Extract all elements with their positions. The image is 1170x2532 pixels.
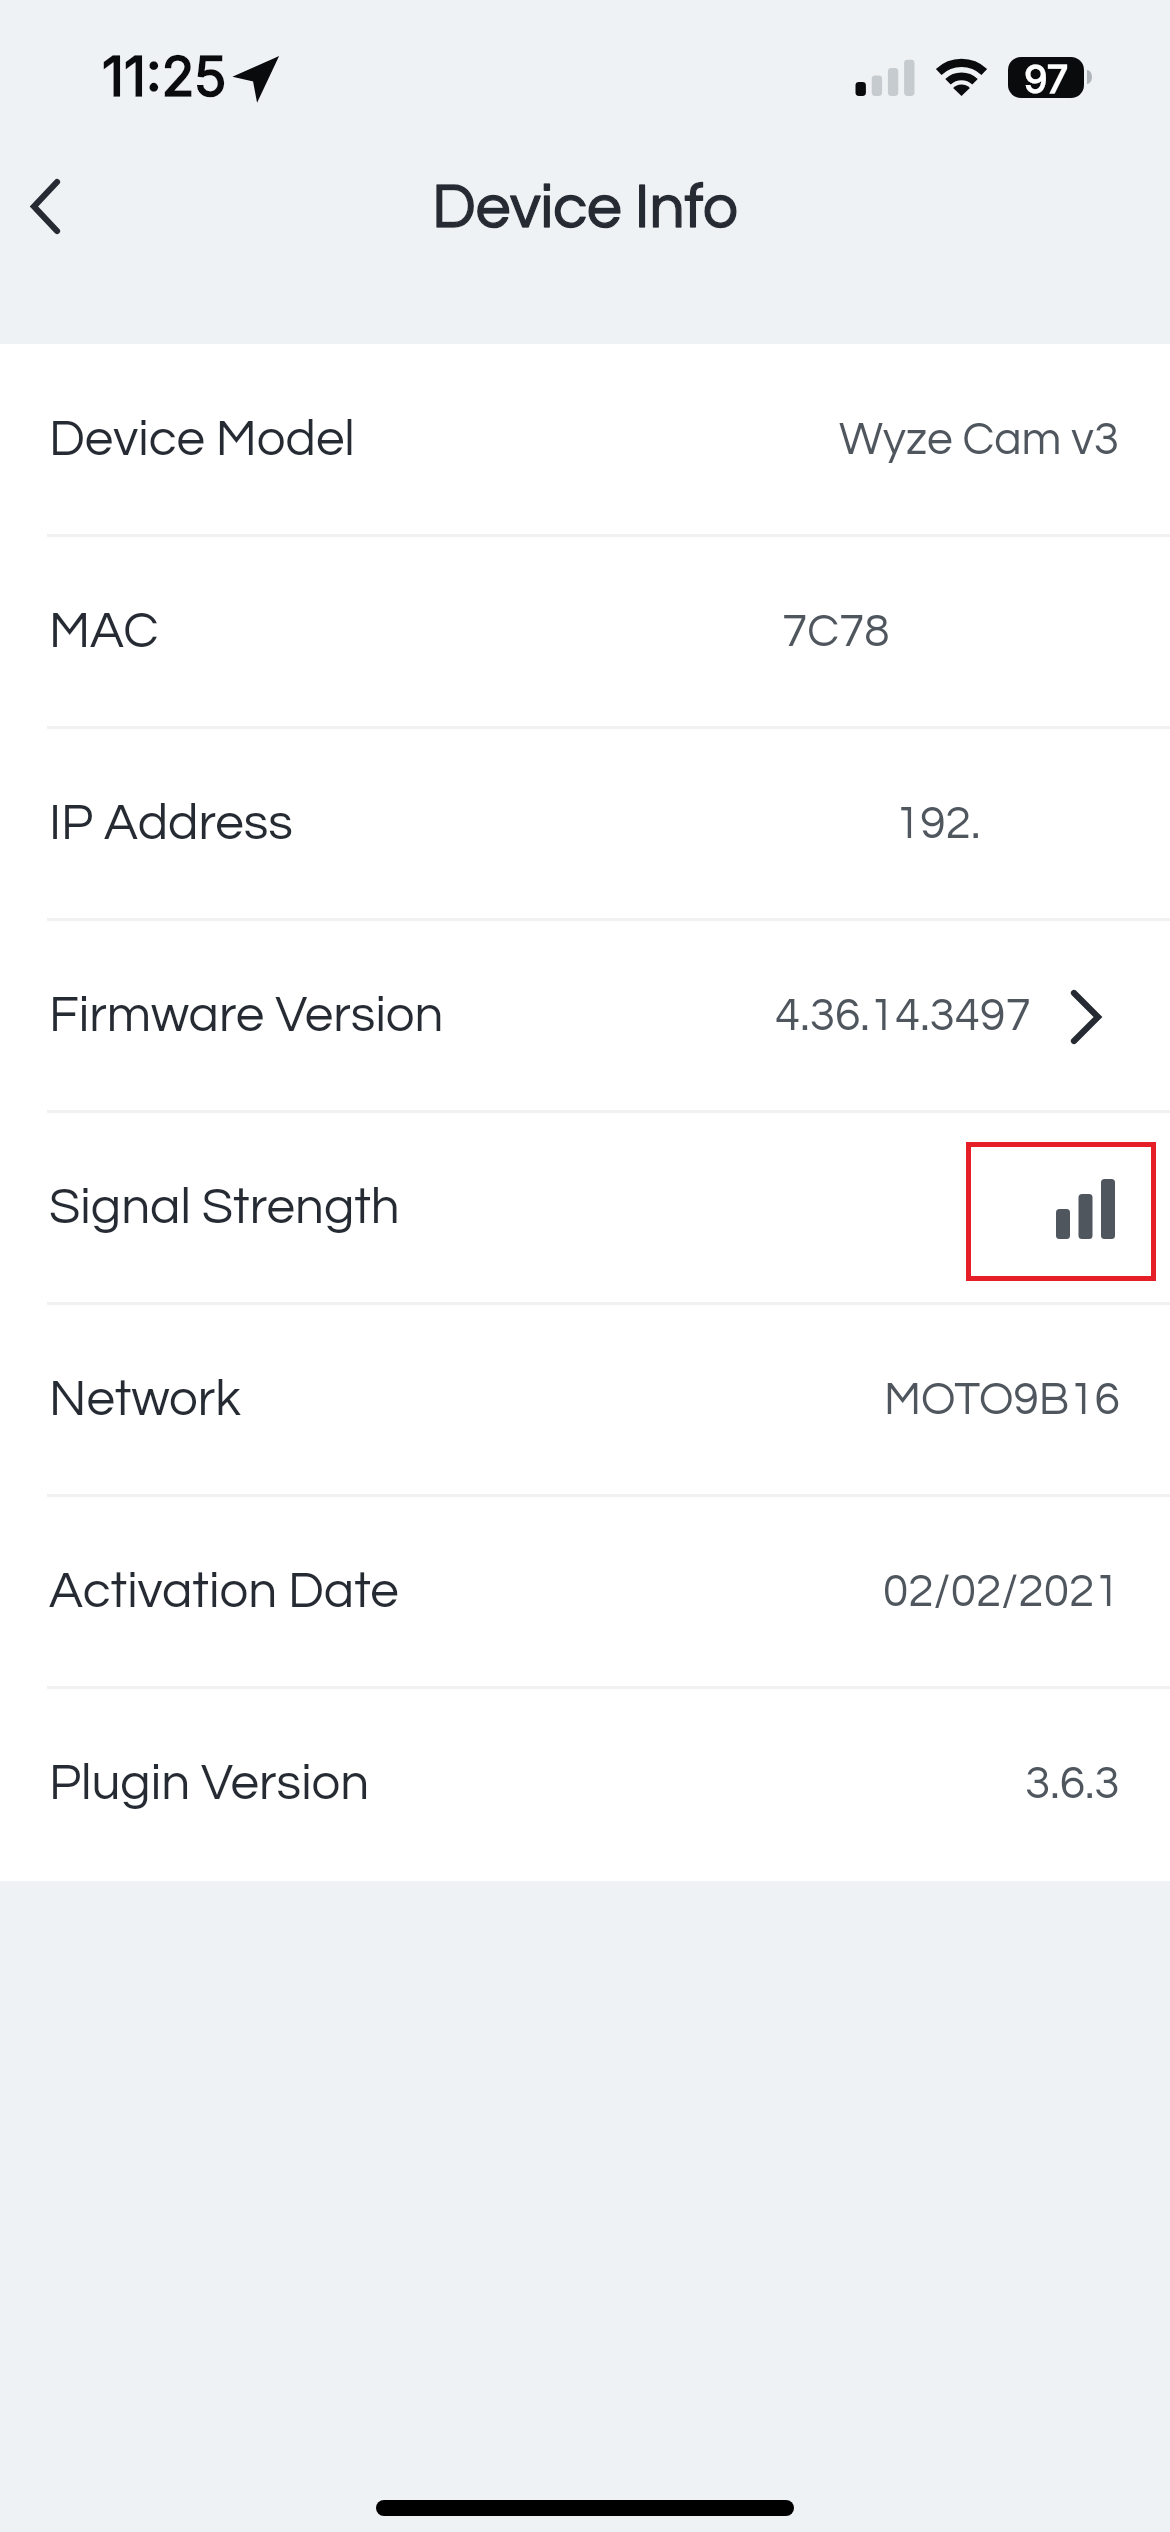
button[interactable]: MAC xyxy=(0,534,1170,726)
staticText: 3.6.3 xyxy=(1025,1760,1120,1807)
button[interactable]: IP Address xyxy=(0,726,1170,918)
staticText: 11:25 xyxy=(102,44,227,109)
button[interactable]: Activation Date xyxy=(0,1494,1170,1686)
staticText: 02/02/2021 xyxy=(883,1568,1120,1615)
staticText: Signal Strength xyxy=(49,1181,400,1234)
button[interactable]: Signal Strength xyxy=(0,1110,1170,1302)
button[interactable]: Network xyxy=(0,1302,1170,1494)
staticText: Plugin Version xyxy=(49,1757,370,1810)
staticText: 7C78 xyxy=(782,608,890,655)
button[interactable]: Plugin Version xyxy=(0,1686,1170,1878)
staticText: 97 xyxy=(1024,57,1069,97)
staticText: Network xyxy=(49,1373,241,1426)
button[interactable]: Device Model xyxy=(0,342,1170,534)
button[interactable]: Firmware Version xyxy=(0,918,1170,1110)
staticText: Device Info xyxy=(432,176,738,240)
staticText: Device Info xyxy=(432,176,738,240)
staticText: MAC xyxy=(49,605,159,658)
staticText: MOTO9B16 xyxy=(884,1376,1120,1423)
button[interactable]: Back xyxy=(0,155,100,259)
staticText: Activation Date xyxy=(49,1565,399,1618)
staticText: Wyze Cam v3 xyxy=(839,416,1120,463)
staticText: IP Address xyxy=(49,797,293,850)
staticText: 192. xyxy=(895,800,981,847)
staticText: 4.36.14.3497 xyxy=(775,992,1031,1039)
staticText: Device Model xyxy=(49,413,355,466)
staticText: Firmware Version xyxy=(49,989,444,1042)
